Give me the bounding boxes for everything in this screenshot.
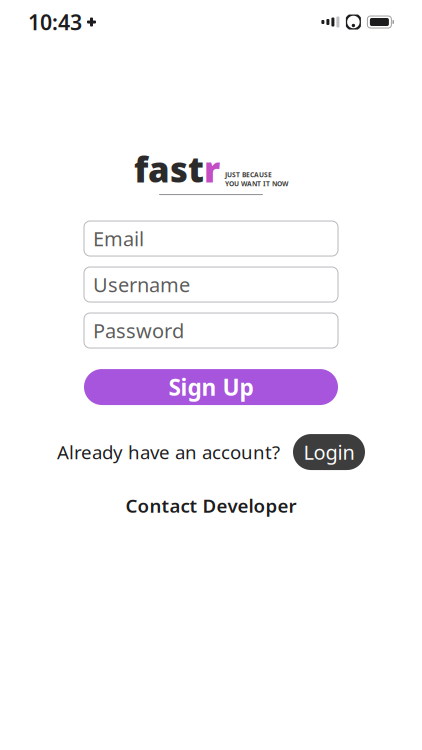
button[interactable]: Password bbox=[84, 313, 338, 348]
staticText: JUST BECAUSE bbox=[225, 170, 272, 179]
staticText: Login bbox=[303, 439, 354, 465]
staticText: YOU WANT IT NOW bbox=[225, 179, 288, 188]
staticText: 10:43 bbox=[28, 8, 82, 36]
staticText: Sign Up bbox=[168, 372, 253, 402]
button[interactable]: Sign Up bbox=[84, 369, 338, 405]
staticText: Already have an account? bbox=[57, 440, 280, 464]
button[interactable]: Contact Developer bbox=[115, 488, 306, 523]
staticText: fast bbox=[134, 146, 204, 192]
button[interactable]: Email bbox=[84, 221, 338, 256]
staticText: Contact Developer bbox=[125, 493, 296, 518]
button[interactable]: Username bbox=[84, 267, 338, 302]
staticText: Email bbox=[93, 225, 144, 252]
staticText: r bbox=[204, 146, 220, 192]
staticText: Password bbox=[93, 317, 184, 344]
button[interactable]: Login bbox=[293, 434, 365, 470]
staticText: Username bbox=[93, 271, 190, 298]
